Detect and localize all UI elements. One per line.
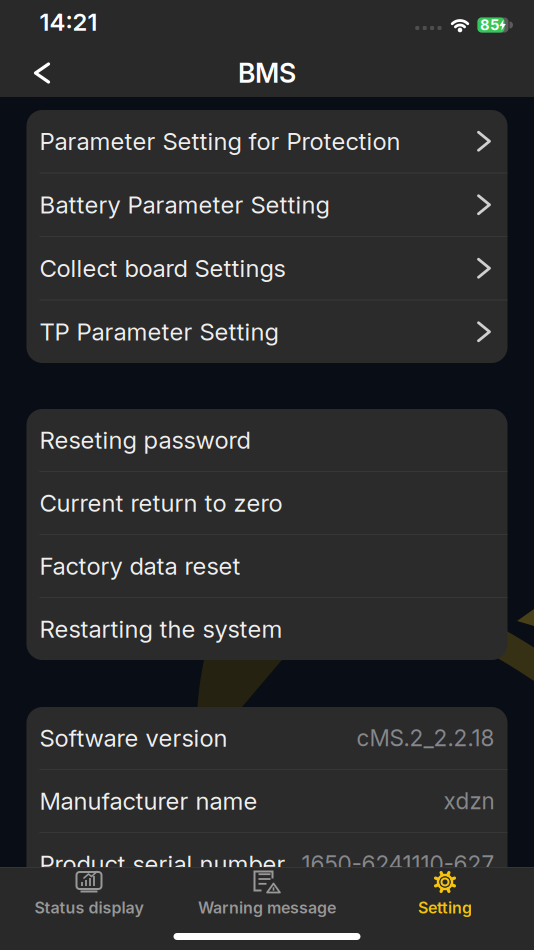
staticText: Current return to zero [39, 488, 282, 517]
button[interactable]: Back [0, 52, 64, 94]
button[interactable]: Setting [356, 870, 534, 926]
button[interactable]: TP Parameter Setting [26, 300, 507, 363]
staticText: Status display [34, 898, 143, 917]
staticText: Parameter Setting for Protection [39, 127, 400, 156]
button[interactable]: Factory data reset [26, 535, 507, 597]
staticText: Reseting password [39, 425, 250, 454]
staticText: Product serial number [39, 849, 285, 878]
staticText: Manufacturer name [39, 786, 257, 815]
button[interactable]: Warning message [178, 870, 356, 926]
staticText: Factory data reset [39, 551, 240, 580]
button[interactable]: Status display [0, 870, 178, 926]
staticText: Restarting the system [39, 614, 282, 643]
staticText: Software version [39, 723, 227, 752]
button[interactable]: Restarting the system [26, 598, 507, 660]
button[interactable]: Battery Parameter Setting [26, 173, 507, 236]
staticText: Battery Parameter Setting [39, 190, 329, 219]
staticText: Setting [418, 898, 472, 917]
staticText: TP Parameter Setting [39, 317, 278, 346]
staticText: 1650-6241110-627 [301, 850, 494, 878]
button[interactable]: Reseting password [26, 409, 507, 471]
staticText: 14:21 [39, 7, 97, 36]
staticText: 85 [480, 16, 499, 34]
staticText: Collect board Settings [39, 254, 285, 283]
button[interactable]: Parameter Setting for Protection [26, 110, 507, 172]
staticText: BMS [238, 57, 296, 89]
staticText: xdzn [443, 787, 494, 815]
staticText: cMS.2_2.2.18 [356, 724, 494, 752]
button[interactable]: Collect board Settings [26, 237, 507, 299]
staticText: Warning message [198, 898, 336, 917]
button[interactable]: Current return to zero [26, 472, 507, 534]
